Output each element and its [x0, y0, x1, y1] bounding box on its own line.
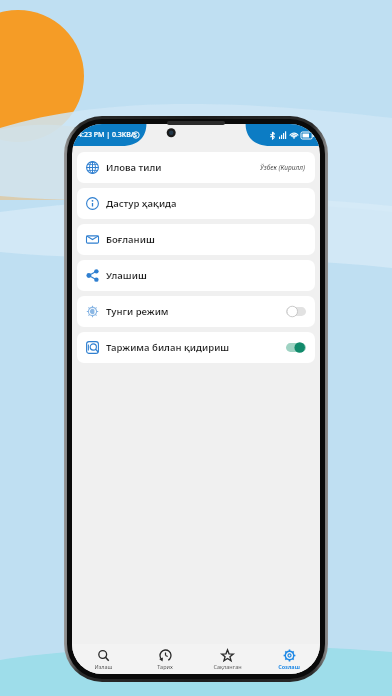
staticText: Сақланган [213, 663, 242, 670]
staticText: Созлаш [278, 663, 300, 670]
staticText: Улашиш [106, 269, 147, 282]
button[interactable]: Тарих [134, 644, 196, 674]
staticText: 4:23 PM | 0.3KB/s [78, 130, 137, 140]
staticText: Тарих [157, 663, 173, 670]
button[interactable]: Сақланган [196, 644, 258, 674]
staticText: Илова тили [106, 161, 162, 174]
staticText: Дастур ҳақида [106, 197, 177, 210]
button[interactable]: Тунги режим [286, 306, 306, 317]
button[interactable]: Излаш [72, 644, 134, 674]
button[interactable]: Таржима билан қидириш [286, 342, 306, 353]
button[interactable]: Созлаш [258, 644, 320, 674]
staticText: Ўзбек (Кирилл) [260, 163, 306, 172]
staticText: Таржима билан қидириш [106, 341, 230, 354]
button[interactable]: Илова тили [77, 152, 315, 183]
button[interactable]: Тунги режим [77, 296, 315, 327]
button[interactable]: Улашиш [77, 260, 315, 291]
staticText: Излаш [94, 663, 113, 670]
staticText: Боғланиш [106, 233, 155, 246]
button[interactable]: Таржима билан қидириш [77, 332, 315, 363]
button[interactable]: Дастур ҳақида [77, 188, 315, 219]
staticText: Тунги режим [106, 305, 169, 318]
button[interactable]: Боғланиш [77, 224, 315, 255]
